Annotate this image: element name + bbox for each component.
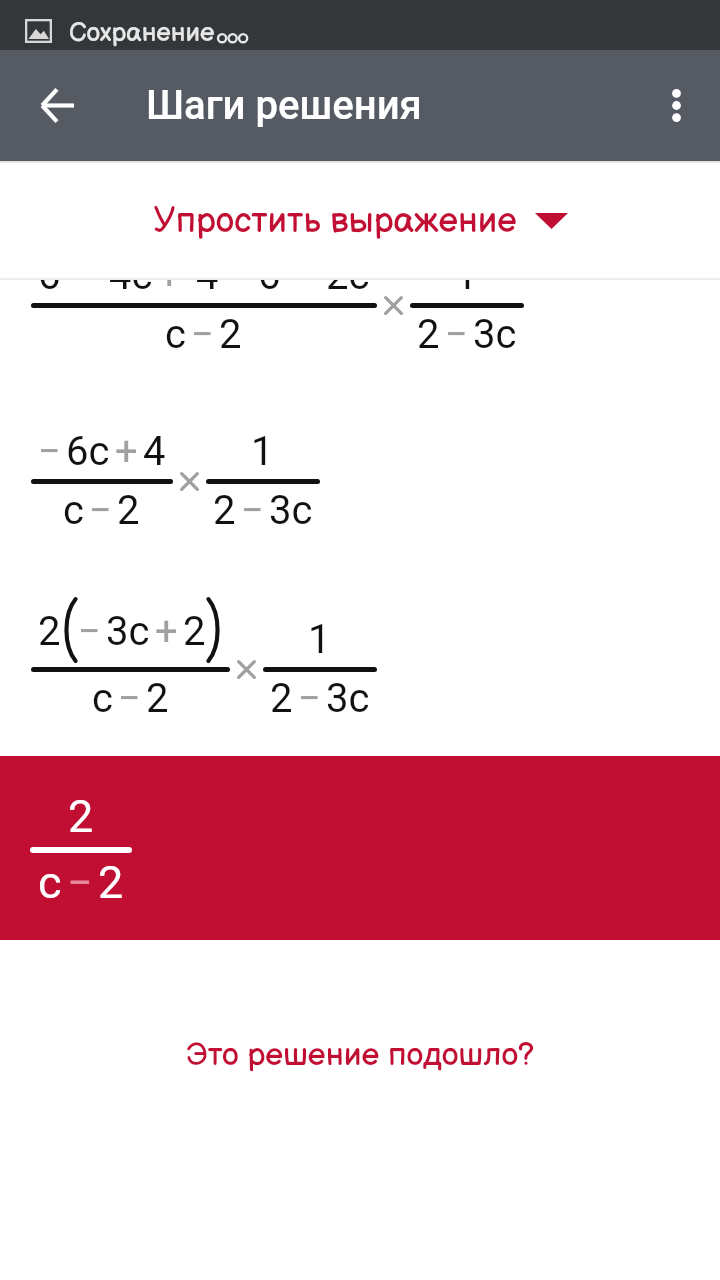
staticText: +	[158, 280, 181, 299]
staticText: 4	[196, 280, 219, 299]
staticText: 6c	[66, 428, 110, 475]
staticText: 2	[213, 487, 236, 534]
staticText: 2	[98, 856, 124, 909]
staticText: 3c	[473, 311, 517, 358]
button[interactable]: More options	[632, 50, 720, 161]
staticText: −	[241, 487, 264, 534]
staticText: Упростить выражение	[153, 200, 517, 242]
staticText: −	[89, 487, 112, 534]
staticText: −	[118, 675, 141, 722]
staticText: 2	[38, 608, 61, 655]
staticText: −	[298, 675, 321, 722]
staticText: 2	[117, 487, 140, 534]
staticText: −	[67, 856, 93, 909]
button[interactable]: 2	[0, 756, 720, 940]
staticText: 6	[258, 280, 281, 299]
staticText: −	[191, 311, 214, 358]
staticText: 3c	[106, 608, 150, 655]
staticText: Это решение подошло?	[186, 1036, 535, 1074]
staticText: −	[445, 311, 468, 358]
staticText: 2	[146, 675, 169, 722]
staticText: Шаги решения	[146, 82, 422, 129]
staticText: c	[38, 856, 62, 909]
staticText: 2c	[326, 280, 370, 299]
staticText: 2	[219, 311, 242, 358]
staticText: +	[115, 428, 138, 475]
staticText: 3c	[326, 675, 370, 722]
staticText: 4c	[109, 280, 153, 299]
staticText: 1	[455, 280, 478, 299]
staticText: 2	[270, 675, 293, 722]
button[interactable]: Упростить выражение	[153, 200, 568, 242]
staticText: 2	[183, 608, 206, 655]
button[interactable]: Back	[0, 50, 113, 161]
staticText: −	[78, 608, 101, 655]
staticText: −	[38, 428, 61, 475]
staticText: 1	[308, 616, 331, 663]
staticText: 1	[251, 428, 274, 475]
staticText: 2	[68, 790, 94, 843]
staticText: c	[92, 675, 113, 722]
button[interactable]: Это решение подошло?	[0, 1036, 720, 1074]
staticText: Сохранение	[69, 18, 215, 49]
staticText: +	[155, 608, 178, 655]
staticText: 3c	[269, 487, 313, 534]
staticText: 2	[417, 311, 440, 358]
staticText: 4	[143, 428, 166, 475]
staticText: 6	[38, 280, 61, 299]
staticText: c	[165, 311, 186, 358]
staticText: c	[63, 487, 84, 534]
